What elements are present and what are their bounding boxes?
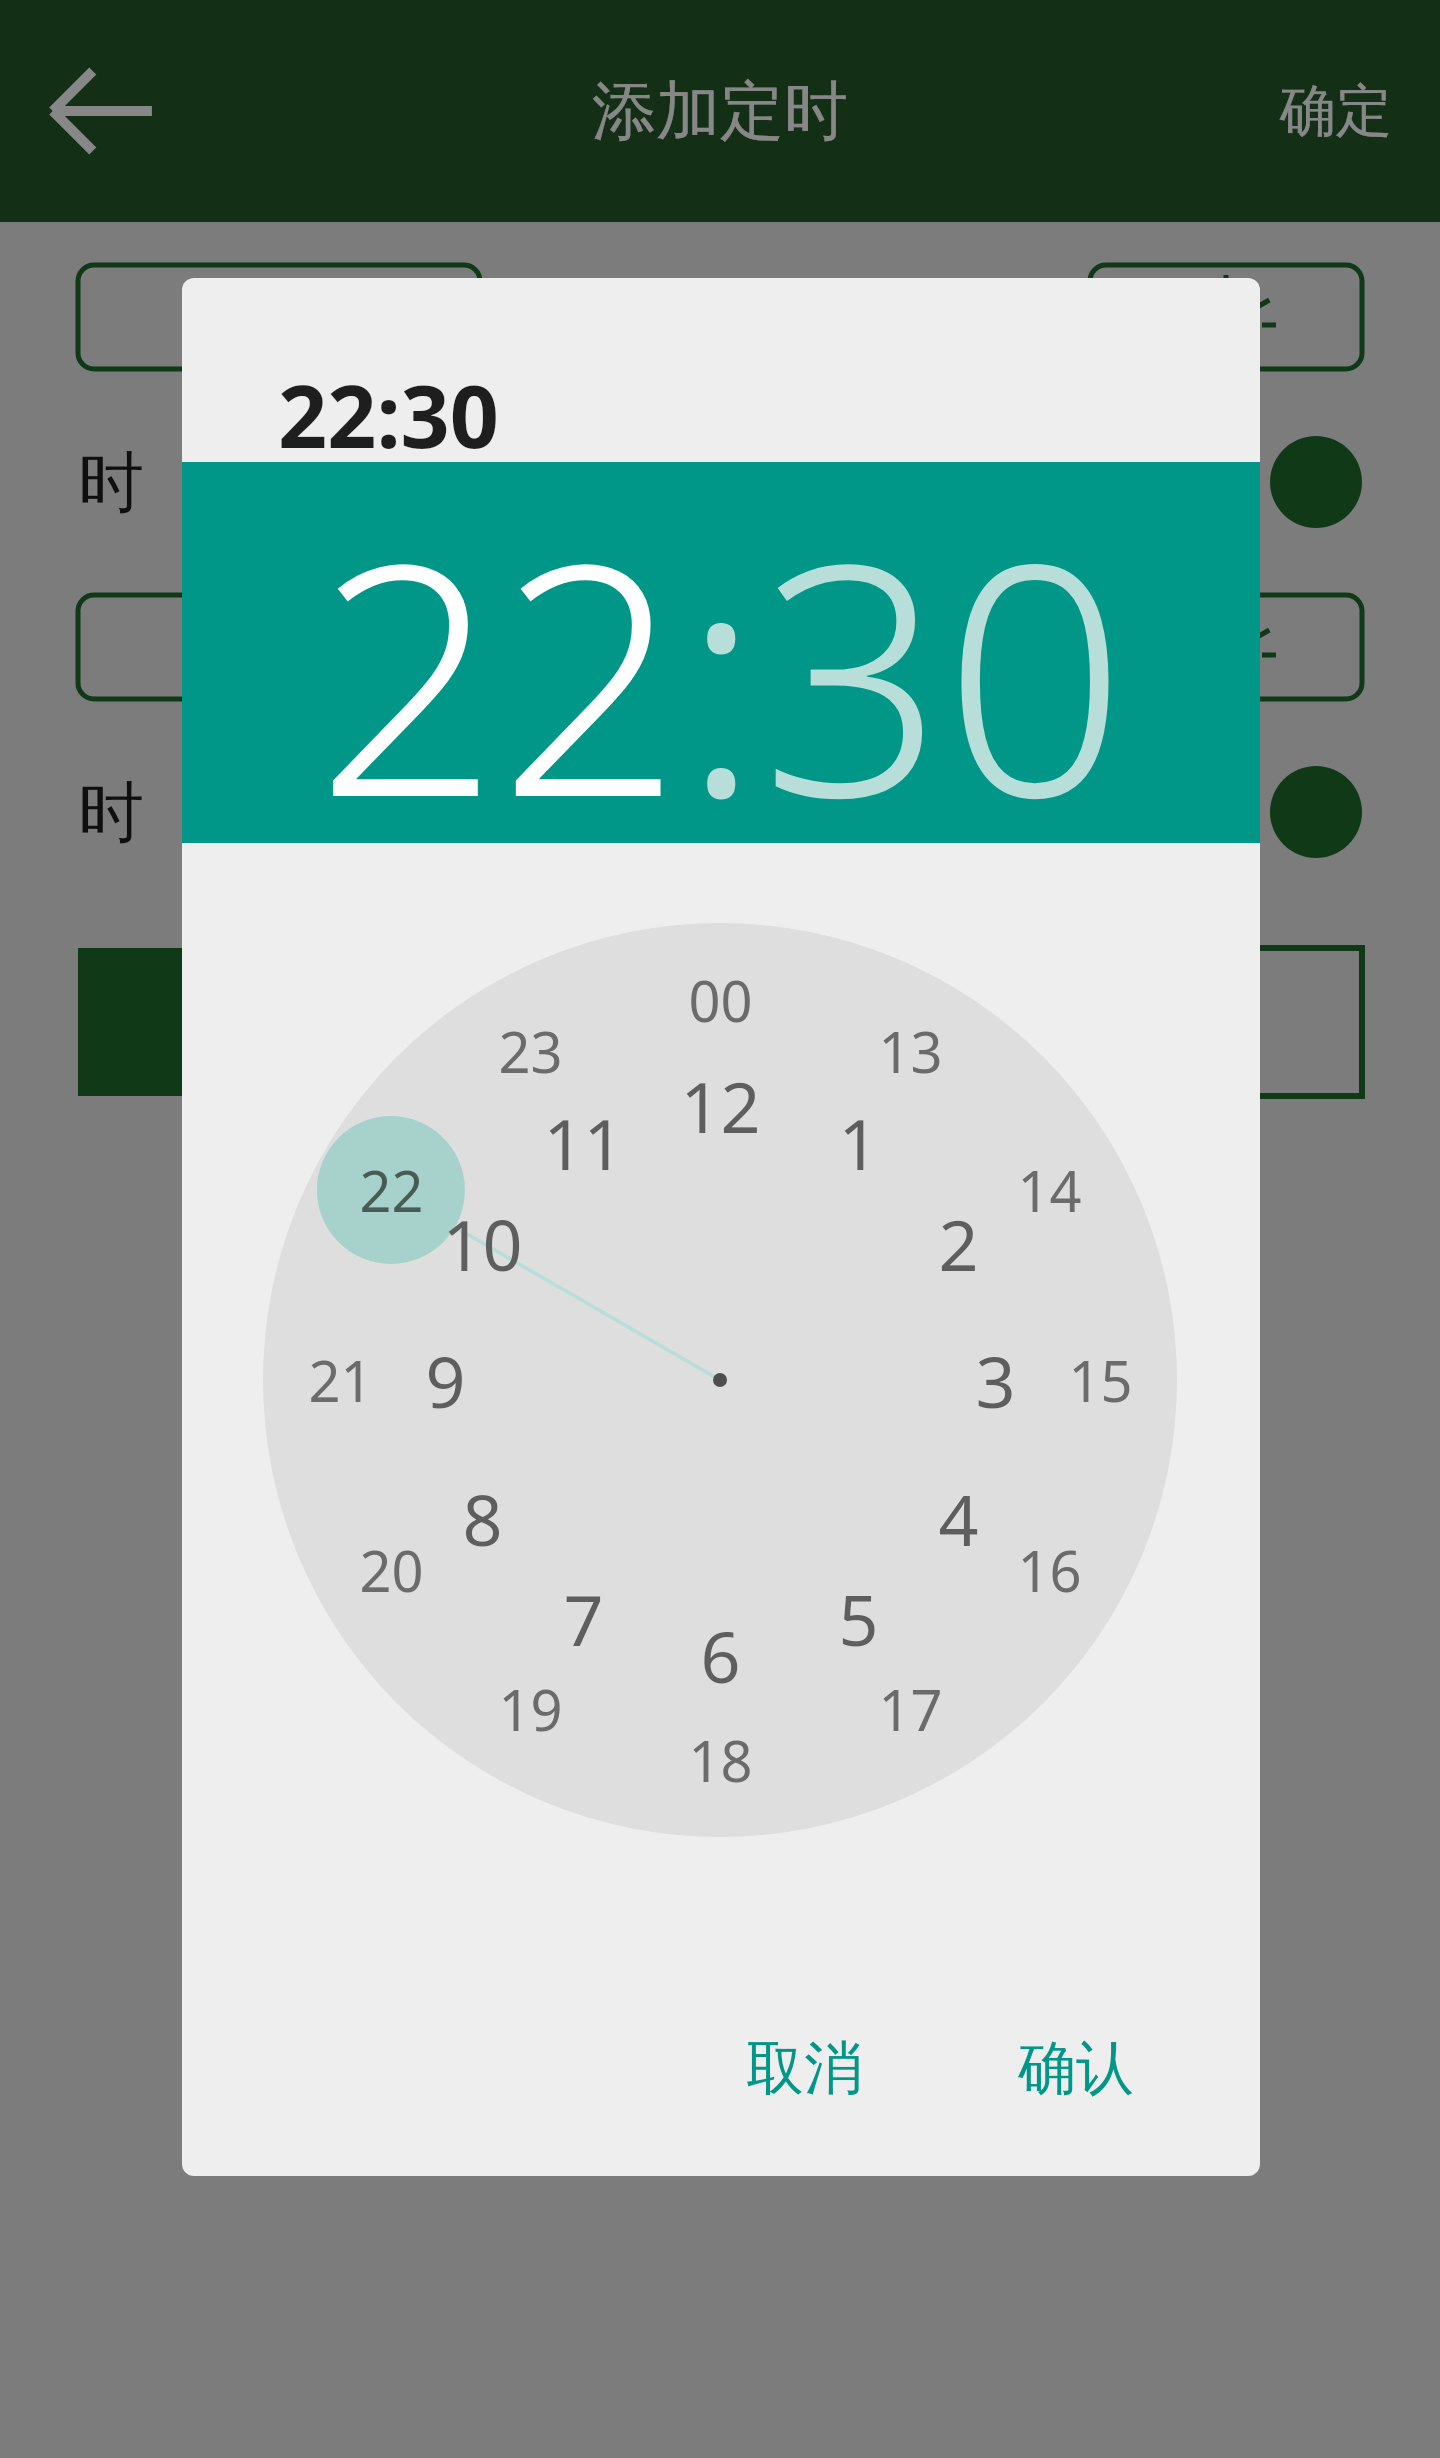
button[interactable]: 关 xyxy=(78,595,480,699)
button[interactable]: 6 xyxy=(645,1607,795,1703)
button[interactable]: Brightness xyxy=(1090,595,1362,699)
button[interactable]: 19 xyxy=(455,1661,605,1757)
staticText: 8 xyxy=(462,1471,503,1566)
staticText: 23 xyxy=(498,1013,563,1089)
staticText: 22:30 xyxy=(278,356,499,473)
button[interactable]: 11 xyxy=(508,1094,658,1190)
staticText: 3 xyxy=(975,1333,1016,1428)
button[interactable]: 3 xyxy=(920,1332,1070,1428)
button[interactable]: 21 xyxy=(265,1332,415,1428)
staticText: 时 xyxy=(78,441,144,524)
button[interactable]: 18 xyxy=(645,1712,795,1808)
staticText: 9 xyxy=(425,1333,466,1428)
button[interactable]: 取消 xyxy=(712,2006,896,2131)
button[interactable]: 1 xyxy=(783,1094,933,1190)
staticText: 2 xyxy=(938,1196,979,1291)
button[interactable]: 00 xyxy=(645,952,795,1048)
staticText: 13 xyxy=(878,1013,943,1089)
staticText: : xyxy=(682,454,761,835)
button[interactable]: 14 xyxy=(974,1142,1124,1238)
button[interactable]: 2 xyxy=(883,1195,1033,1291)
staticText: 14 xyxy=(1017,1152,1082,1228)
button[interactable]: 23 xyxy=(455,1003,605,1099)
button[interactable]: 22 xyxy=(316,454,682,835)
button[interactable]: 30 xyxy=(761,454,1127,835)
button[interactable]: 12 xyxy=(645,1057,795,1153)
button[interactable]: Brightness xyxy=(1090,265,1362,369)
staticText: 22 xyxy=(359,1152,424,1228)
staticText: 11 xyxy=(543,1095,624,1190)
button[interactable]: 确认 xyxy=(984,2006,1168,2131)
button[interactable]: 10 xyxy=(407,1195,557,1291)
staticText: 确定 xyxy=(1280,76,1392,147)
staticText: 20 xyxy=(359,1532,424,1608)
staticText: 16 xyxy=(1017,1532,1082,1608)
staticText: 时 xyxy=(78,771,144,854)
button[interactable]: 16 xyxy=(974,1522,1124,1618)
button[interactable]: 7 xyxy=(508,1570,658,1666)
button[interactable]: 4 xyxy=(883,1470,1033,1566)
staticText: 19 xyxy=(498,1671,563,1747)
button[interactable]: 确定 xyxy=(1280,76,1392,147)
staticText: 15 xyxy=(1068,1342,1133,1418)
staticText: 21 xyxy=(308,1342,373,1418)
button[interactable]: 13 xyxy=(835,1003,985,1099)
staticText: 6 xyxy=(700,1608,741,1703)
staticText: 00 xyxy=(688,962,753,1038)
staticText: 1 xyxy=(838,1095,879,1190)
button[interactable]: 9 xyxy=(370,1332,520,1428)
staticText: 18 xyxy=(688,1722,753,1798)
staticText: 添加定时 xyxy=(592,71,848,152)
button[interactable]: 17 xyxy=(835,1661,985,1757)
button[interactable]: Back xyxy=(34,44,168,178)
staticText: 17 xyxy=(878,1671,943,1747)
staticText: 取消 xyxy=(746,2032,862,2105)
staticText: 10 xyxy=(442,1196,523,1291)
button[interactable]: 22 xyxy=(316,1142,466,1238)
button[interactable]: 8 xyxy=(407,1470,557,1566)
button[interactable]: 单次 xyxy=(78,948,414,1096)
staticText: 12 xyxy=(680,1058,761,1153)
button[interactable]: 关 xyxy=(78,265,480,369)
staticText: 5 xyxy=(838,1571,879,1666)
button[interactable]: Toggle xyxy=(1270,766,1362,858)
staticText: 7 xyxy=(563,1571,604,1666)
button[interactable]: 日 xyxy=(1026,948,1362,1096)
staticText: 4 xyxy=(938,1471,979,1566)
button[interactable]: 15 xyxy=(1025,1332,1175,1428)
button[interactable]: Toggle xyxy=(1270,436,1362,528)
button[interactable]: 20 xyxy=(316,1522,466,1618)
button[interactable]: 5 xyxy=(783,1570,933,1666)
staticText: 确认 xyxy=(1018,2032,1134,2105)
